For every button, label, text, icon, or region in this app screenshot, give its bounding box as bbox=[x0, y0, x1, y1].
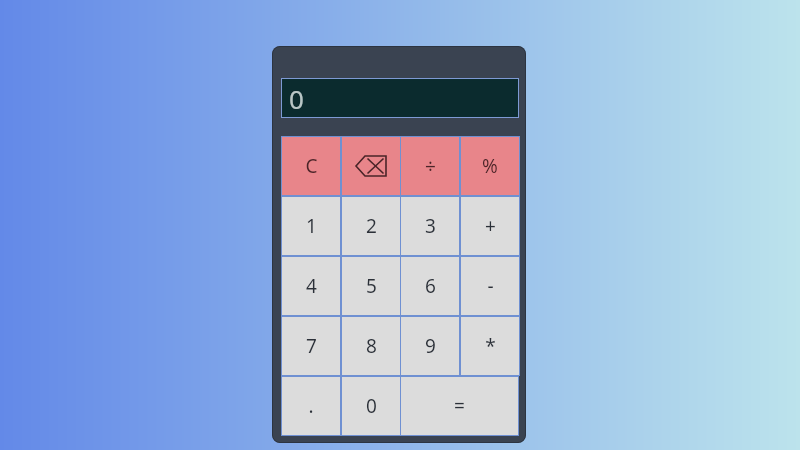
button[interactable]: 8 bbox=[341, 316, 401, 376]
staticText: 8 bbox=[366, 333, 377, 359]
button[interactable]: 1 bbox=[281, 196, 341, 256]
staticText: 1 bbox=[306, 213, 317, 239]
button[interactable]: 0 bbox=[341, 376, 401, 436]
button[interactable]: + bbox=[460, 196, 520, 256]
staticText: C bbox=[305, 153, 318, 179]
staticText: 9 bbox=[425, 333, 436, 359]
button[interactable]: 7 bbox=[281, 316, 341, 376]
button[interactable]: 4 bbox=[281, 256, 341, 316]
button[interactable]: = bbox=[400, 376, 519, 436]
staticText: 5 bbox=[366, 273, 377, 299]
staticText: 0 bbox=[366, 393, 377, 419]
button[interactable]: % bbox=[460, 136, 520, 196]
staticText: 2 bbox=[366, 213, 377, 239]
button[interactable]: 9 bbox=[400, 316, 460, 376]
button[interactable]: 3 bbox=[400, 196, 460, 256]
button[interactable]: Backspace bbox=[341, 136, 401, 196]
staticText: 0 bbox=[289, 81, 304, 116]
button[interactable]: 5 bbox=[341, 256, 401, 316]
button[interactable]: - bbox=[460, 256, 520, 316]
staticText: % bbox=[482, 153, 498, 179]
staticText: * bbox=[485, 333, 496, 359]
staticText: = bbox=[454, 393, 465, 419]
staticText: 6 bbox=[425, 273, 436, 299]
staticText: ÷ bbox=[425, 153, 436, 179]
button[interactable]: . bbox=[281, 376, 341, 436]
staticText: . bbox=[308, 393, 314, 419]
staticText: 4 bbox=[306, 273, 317, 299]
button[interactable]: 6 bbox=[400, 256, 460, 316]
staticText: - bbox=[487, 273, 494, 299]
staticText: 7 bbox=[306, 333, 317, 359]
button[interactable]: ÷ bbox=[400, 136, 460, 196]
button[interactable]: 2 bbox=[341, 196, 401, 256]
button[interactable]: C bbox=[281, 136, 341, 196]
button[interactable]: * bbox=[460, 316, 520, 376]
staticText: + bbox=[485, 213, 496, 239]
staticText: 3 bbox=[425, 213, 436, 239]
button[interactable]: 0 bbox=[281, 78, 519, 118]
